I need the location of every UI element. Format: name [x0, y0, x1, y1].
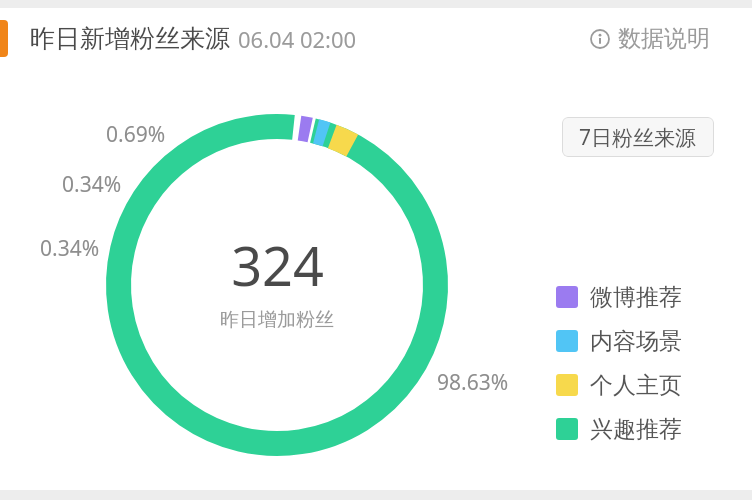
button[interactable]: 数据说明	[588, 20, 712, 57]
button[interactable]: 个人主页	[556, 363, 682, 407]
staticText: 98.63%	[437, 368, 509, 397]
staticText: 324	[231, 228, 324, 302]
staticText: 昨日新增粉丝来源	[30, 23, 230, 54]
staticText: 06.04 02:00	[238, 24, 357, 54]
button[interactable]: 兴趣推荐	[556, 407, 682, 451]
staticText: 0.69%	[106, 120, 166, 149]
staticText: 0.34%	[62, 170, 122, 199]
staticText: 数据说明	[618, 24, 710, 53]
staticText: 内容场景	[590, 327, 682, 356]
staticText: 个人主页	[590, 371, 682, 400]
button[interactable]: 7日粉丝来源	[562, 117, 714, 157]
button[interactable]: 微博推荐	[556, 275, 682, 319]
staticText: 0.34%	[40, 234, 100, 263]
button[interactable]: 内容场景	[556, 319, 682, 363]
staticText: 7日粉丝来源	[579, 123, 697, 152]
staticText: 昨日增加粉丝	[220, 308, 334, 332]
other: 数据说明	[590, 29, 610, 49]
staticText: 微博推荐	[590, 283, 682, 312]
staticText: 兴趣推荐	[590, 415, 682, 444]
